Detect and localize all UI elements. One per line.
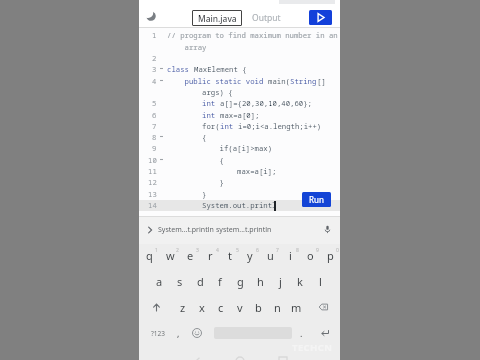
staticText: r bbox=[208, 248, 213, 263]
staticText: 12 bbox=[148, 177, 157, 187]
staticText: 1 bbox=[155, 247, 158, 254]
button[interactable]: r bbox=[200, 242, 220, 268]
button[interactable]: Enter bbox=[310, 320, 340, 346]
staticText: 14 bbox=[148, 200, 157, 210]
staticText: for( bbox=[167, 121, 220, 131]
button[interactable]: x bbox=[192, 294, 211, 320]
button[interactable]: a bbox=[149, 268, 170, 294]
staticText: class bbox=[167, 64, 194, 74]
staticText: u bbox=[267, 248, 274, 263]
staticText: b bbox=[255, 300, 262, 315]
staticText: MaxElement { bbox=[194, 64, 247, 74]
staticText: max=a[0]; bbox=[220, 110, 260, 120]
button[interactable]: System...t.println bbox=[158, 219, 214, 241]
staticText: main( bbox=[268, 76, 290, 86]
staticText: String bbox=[290, 76, 317, 86]
staticText: 0 bbox=[336, 247, 339, 254]
button[interactable]: y bbox=[240, 242, 260, 268]
button[interactable]: Output bbox=[244, 10, 289, 26]
staticText: int bbox=[167, 110, 220, 120]
staticText: 2 bbox=[152, 53, 157, 63]
button[interactable]: j bbox=[270, 268, 290, 294]
button[interactable]: Main.java bbox=[192, 10, 242, 26]
button[interactable]: More suggestions bbox=[143, 223, 156, 236]
staticText: 13 bbox=[148, 189, 157, 199]
staticText: m bbox=[291, 300, 302, 315]
staticText: 4 bbox=[216, 247, 219, 254]
staticText: 6 bbox=[152, 110, 157, 120]
staticText: g bbox=[237, 274, 244, 289]
button[interactable]: Run program bbox=[309, 10, 332, 25]
button[interactable]: f bbox=[210, 268, 230, 294]
button[interactable]: k bbox=[290, 268, 310, 294]
staticText: { bbox=[167, 155, 224, 165]
button[interactable]: , bbox=[176, 320, 180, 346]
staticText: args) { bbox=[167, 87, 233, 97]
staticText: i bbox=[289, 248, 292, 263]
button[interactable]: b bbox=[249, 294, 268, 320]
staticText: q bbox=[146, 248, 153, 263]
button[interactable]: Run bbox=[302, 192, 331, 207]
button[interactable]: ?123 bbox=[139, 320, 176, 346]
staticText: System.out.printl bbox=[167, 200, 277, 210]
button[interactable]: g bbox=[230, 268, 250, 294]
staticText: 7 bbox=[152, 121, 157, 131]
staticText: k bbox=[297, 274, 303, 289]
button[interactable]: o bbox=[300, 242, 320, 268]
button[interactable]: s bbox=[170, 268, 190, 294]
staticText: 7 bbox=[276, 247, 279, 254]
staticText: System...t.println bbox=[158, 225, 214, 235]
button[interactable]: Recent apps bbox=[274, 355, 291, 360]
button[interactable]: q bbox=[139, 242, 160, 268]
button[interactable]: Back bbox=[189, 355, 206, 360]
staticText: Main.java bbox=[198, 13, 237, 24]
button[interactable]: t bbox=[220, 242, 240, 268]
staticText: public static void bbox=[167, 76, 268, 86]
staticText: 3 bbox=[152, 64, 157, 74]
button[interactable]: Home bbox=[231, 355, 248, 360]
staticText: j bbox=[279, 274, 282, 289]
staticText: Output bbox=[252, 12, 281, 24]
button[interactable]: n bbox=[268, 294, 287, 320]
staticText: system...t.println bbox=[216, 225, 272, 235]
button[interactable]: h bbox=[250, 268, 270, 294]
button[interactable]: u bbox=[260, 242, 280, 268]
staticText: o bbox=[307, 248, 314, 263]
staticText: 8 bbox=[152, 132, 157, 142]
button[interactable]: Toggle dark mode bbox=[139, 2, 163, 30]
staticText: 11 bbox=[148, 166, 157, 176]
button[interactable]: p bbox=[320, 242, 340, 268]
button[interactable]: d bbox=[190, 268, 210, 294]
staticText: int bbox=[167, 98, 220, 108]
button[interactable]: Emoji bbox=[180, 320, 214, 346]
staticText: v bbox=[237, 300, 243, 315]
staticText: max=a[i]; bbox=[167, 166, 277, 176]
button[interactable]: . bbox=[292, 320, 310, 346]
staticText: // program to find maximum number in an bbox=[167, 30, 338, 40]
staticText: int bbox=[220, 121, 238, 131]
button[interactable]: Backspace bbox=[306, 294, 340, 320]
staticText: s bbox=[177, 274, 183, 289]
staticText: 9 bbox=[316, 247, 319, 254]
button[interactable]: w bbox=[160, 242, 180, 268]
button[interactable]: m bbox=[287, 294, 306, 320]
button[interactable]: c bbox=[211, 294, 230, 320]
staticText: array bbox=[167, 42, 207, 52]
button[interactable]: Voice input bbox=[321, 223, 334, 236]
button[interactable]: i bbox=[280, 242, 300, 268]
button[interactable]: z bbox=[173, 294, 192, 320]
staticText: } bbox=[167, 177, 224, 187]
button[interactable]: v bbox=[230, 294, 249, 320]
staticText: z bbox=[180, 300, 186, 315]
staticText: i=0;i<a.length;i++) bbox=[238, 121, 322, 131]
button[interactable]: l bbox=[310, 268, 330, 294]
staticText: e bbox=[187, 248, 194, 263]
staticText: 2 bbox=[176, 247, 179, 254]
staticText: 6 bbox=[256, 247, 259, 254]
staticText: ?123 bbox=[151, 329, 165, 338]
button[interactable]: e bbox=[180, 242, 200, 268]
button[interactable]: Shift bbox=[139, 294, 173, 320]
button[interactable]: system...t.println bbox=[216, 219, 272, 241]
